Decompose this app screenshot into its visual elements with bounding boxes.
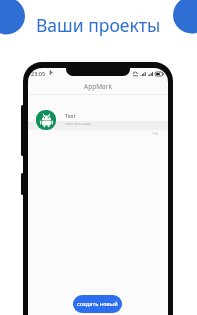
- staticText: создать новый: [77, 300, 118, 308]
- staticText: Test: [65, 112, 76, 119]
- staticText: com.test.app: [65, 121, 91, 127]
- staticText: 23:05: [31, 70, 46, 77]
- staticText: AppMark: [84, 82, 112, 91]
- button[interactable]: [28, 107, 168, 137]
- staticText: 1.0: [152, 131, 158, 137]
- other: Status icons: [133, 70, 164, 78]
- button[interactable]: создать новый: [73, 295, 122, 313]
- staticText: Ваши проекты: [36, 13, 161, 37]
